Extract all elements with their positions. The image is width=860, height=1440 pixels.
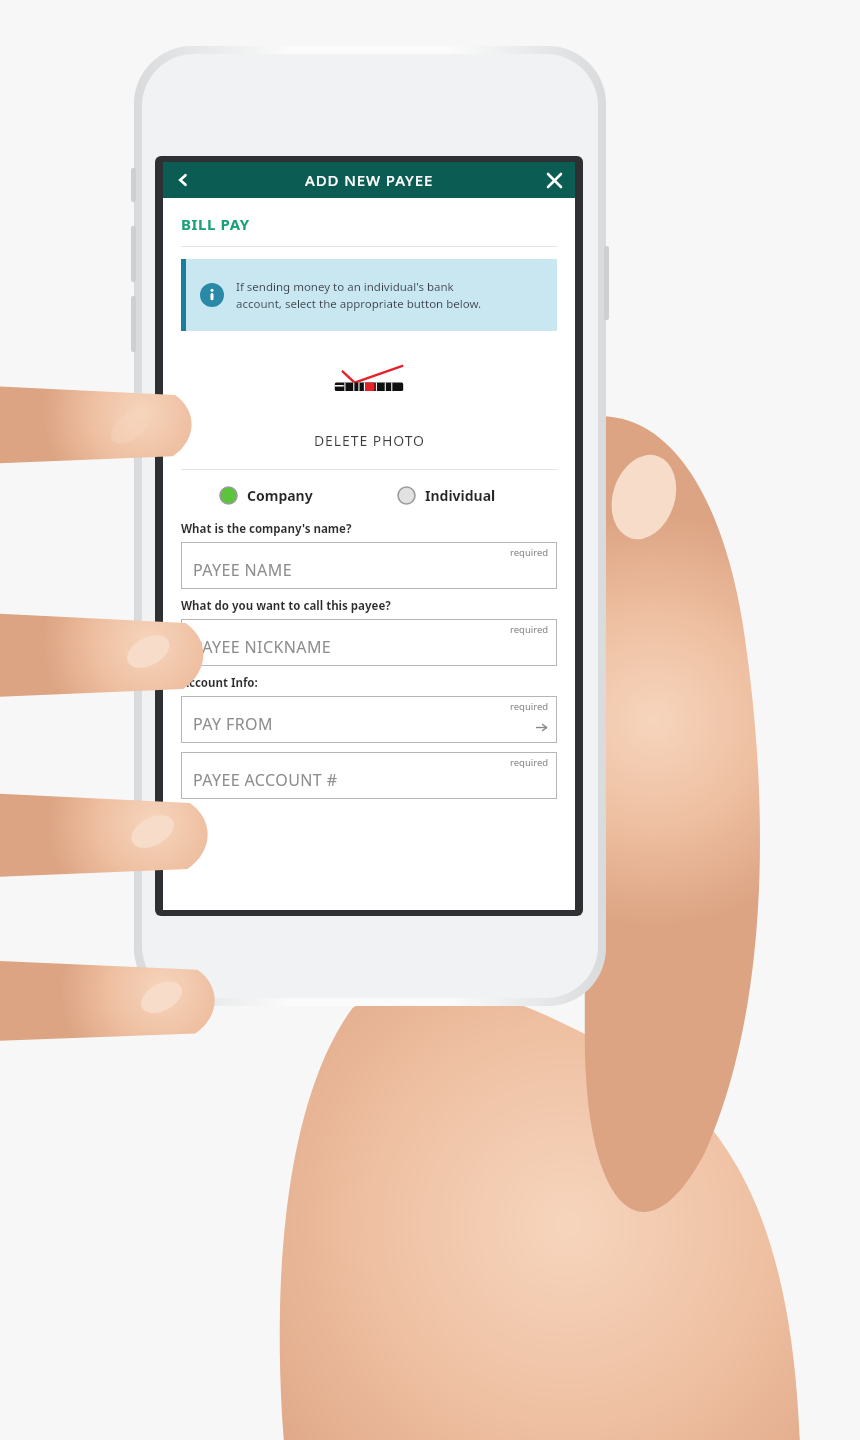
staticText: required [510,756,549,769]
staticText: What do you want to call this payee? [181,598,391,614]
staticText: BILL PAY [181,214,250,234]
button[interactable]: Close [533,162,575,198]
staticText: Account Info: [181,675,258,691]
staticText: Company [247,486,313,505]
button[interactable]: required [181,619,557,666]
staticText: DELETE PHOTO [314,431,425,450]
staticText: What is the company's name? [181,521,352,537]
button[interactable]: Back [163,162,203,198]
staticText: required [510,700,549,713]
staticText: required [510,546,549,559]
button[interactable]: Individual [397,486,575,505]
staticText: If sending money to an individual's bank… [236,279,482,312]
button[interactable]: required [181,696,557,743]
staticText: required [510,623,549,636]
button[interactable]: required [181,542,557,589]
button[interactable]: required [181,752,557,799]
staticText: PAY FROM [193,713,273,735]
staticText: ADD NEW PAYEE [305,170,434,190]
button[interactable]: Company [219,486,369,505]
button[interactable]: DELETE PHOTO [163,425,575,455]
staticText: PAYEE ACCOUNT # [193,769,338,791]
staticText: PAYEE NAME [193,559,292,581]
staticText: PAYEE NICKNAME [193,636,332,658]
staticText: Individual [425,486,496,505]
